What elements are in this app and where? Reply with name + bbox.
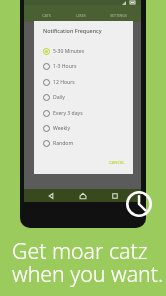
- button[interactable]: Every 3 days: [34, 106, 133, 121]
- button[interactable]: Daily: [34, 90, 133, 105]
- staticText: 5-30 Minutes: [53, 48, 85, 55]
- staticText: when you want.: [12, 259, 164, 288]
- staticText: CATS: [42, 13, 51, 18]
- staticText: Get moar catz: [12, 236, 148, 265]
- button[interactable]: 5-30 Minutes: [34, 44, 133, 59]
- button[interactable]: Recent apps: [111, 192, 119, 200]
- staticText: SETTINGS: [110, 13, 127, 18]
- staticText: LIKES: [76, 13, 86, 18]
- staticText: 1-3 Hours: [53, 63, 77, 70]
- button[interactable]: LIKES: [62, 5, 100, 22]
- button[interactable]: Back: [47, 192, 55, 200]
- button[interactable]: 1-3 Hours: [34, 59, 133, 74]
- button[interactable]: SETTINGS: [99, 5, 137, 22]
- button[interactable]: Weekly: [34, 121, 133, 136]
- button[interactable]: Random: [34, 136, 133, 151]
- button[interactable]: 12 Hours: [34, 75, 133, 90]
- staticText: Notification Frequency: [43, 27, 102, 34]
- button[interactable]: Home: [79, 192, 87, 200]
- staticText: Daily: [53, 94, 65, 101]
- staticText: Random: [53, 140, 74, 147]
- staticText: 12 Hours: [53, 79, 75, 86]
- other: Clock: [126, 191, 152, 217]
- staticText: CANCEL: [109, 160, 125, 166]
- button[interactable]: CATS: [27, 5, 65, 22]
- staticText: Weekly: [53, 125, 71, 132]
- staticText: Every 3 days: [53, 110, 83, 117]
- button[interactable]: CANCEL: [105, 157, 129, 169]
